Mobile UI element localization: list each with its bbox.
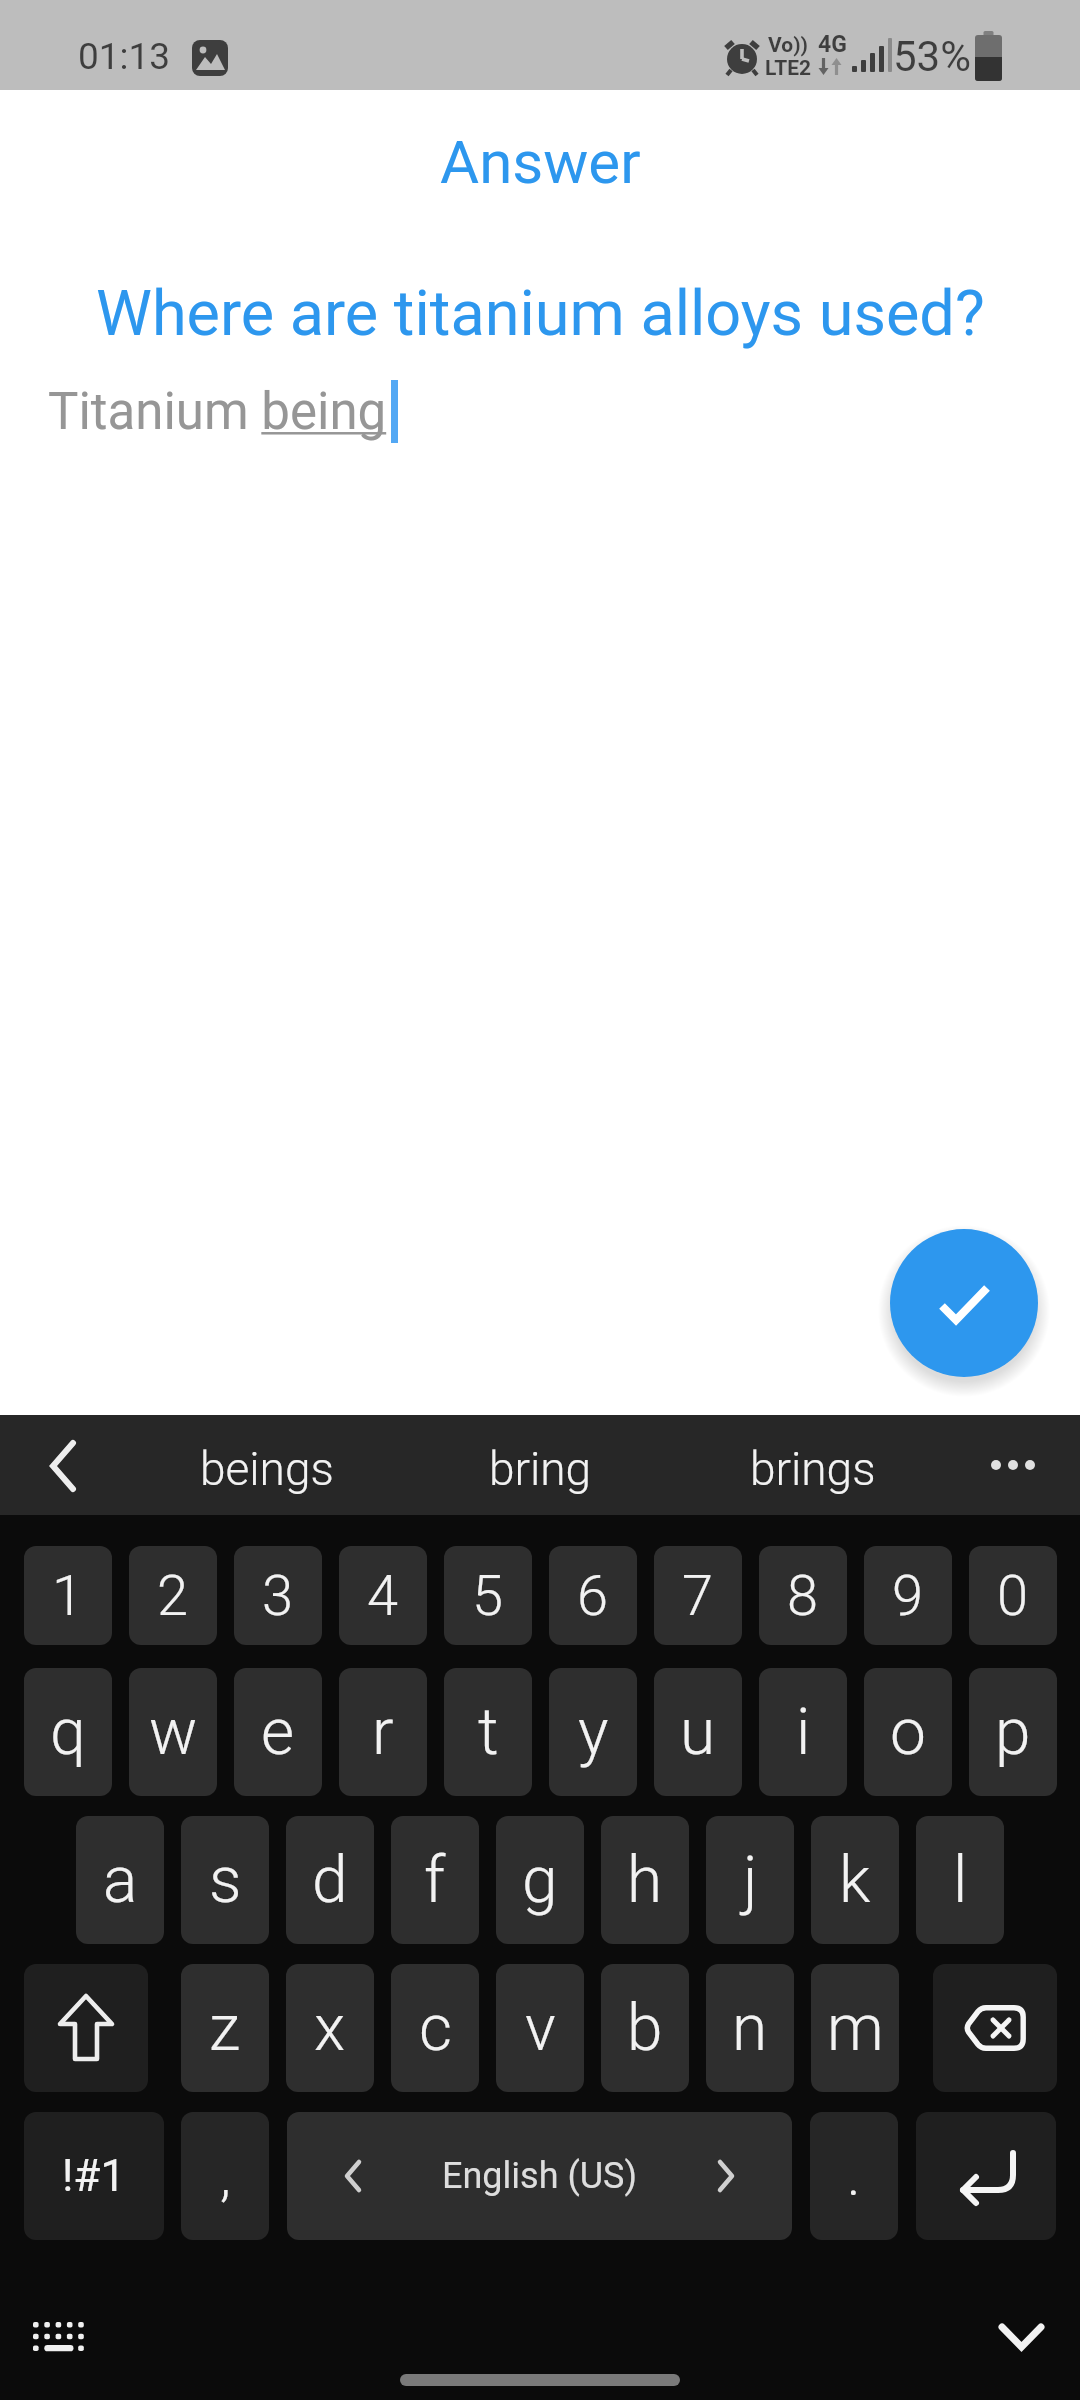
staticText: brings — [750, 1442, 876, 1496]
staticText: !#1 — [62, 2150, 126, 2202]
button[interactable]: v — [496, 1964, 584, 2092]
staticText: j — [743, 1843, 758, 1918]
button[interactable] — [890, 1229, 1038, 1377]
staticText: x — [314, 1991, 346, 2066]
button[interactable]: 3 — [234, 1546, 322, 1645]
staticText: f — [424, 1843, 446, 1918]
button[interactable]: brings — [703, 1419, 923, 1519]
button[interactable]: bring — [430, 1419, 650, 1519]
staticText: v — [525, 1991, 556, 2066]
button[interactable] — [45, 1440, 83, 1492]
button[interactable]: r — [339, 1668, 427, 1796]
staticText: 1 — [52, 1563, 84, 1629]
button[interactable] — [24, 1964, 148, 2092]
button[interactable]: g — [496, 1816, 584, 1944]
staticText: k — [839, 1843, 871, 1918]
staticText: 8 — [787, 1563, 819, 1629]
staticText: English (US) — [442, 2155, 637, 2197]
button[interactable]: p — [969, 1668, 1057, 1796]
staticText: g — [522, 1843, 558, 1918]
staticText: 7 — [682, 1563, 714, 1629]
button[interactable]: w — [129, 1668, 217, 1796]
button[interactable]: c — [391, 1964, 479, 2092]
button[interactable]: . — [810, 2112, 898, 2240]
button[interactable]: f — [391, 1816, 479, 1944]
staticText: w — [149, 1695, 198, 1770]
staticText: r — [372, 1695, 394, 1770]
button[interactable]: x — [286, 1964, 374, 2092]
button[interactable]: e — [234, 1668, 322, 1796]
staticText: 3 — [262, 1563, 294, 1629]
button[interactable]: 5 — [444, 1546, 532, 1645]
button[interactable]: 6 — [549, 1546, 637, 1645]
button[interactable]: l — [916, 1816, 1004, 1944]
button[interactable]: beings — [157, 1419, 377, 1519]
button[interactable] — [988, 1455, 1044, 1475]
staticText: c — [419, 1991, 452, 2066]
button[interactable]: 1 — [24, 1546, 112, 1645]
staticText: p — [995, 1695, 1031, 1770]
button[interactable]: 8 — [759, 1546, 847, 1645]
button[interactable]: z — [181, 1964, 269, 2092]
staticText: m — [827, 1991, 884, 2066]
button[interactable]: i — [759, 1668, 847, 1796]
staticText: i — [796, 1695, 811, 1770]
button[interactable] — [998, 2323, 1046, 2353]
staticText: z — [209, 1991, 241, 2066]
button[interactable]: 7 — [654, 1546, 742, 1645]
button[interactable]: b — [601, 1964, 689, 2092]
button[interactable]: English (US) — [287, 2112, 792, 2240]
staticText: 5 — [472, 1563, 504, 1629]
button[interactable]: m — [811, 1964, 899, 2092]
staticText: Titanium being — [48, 382, 387, 442]
staticText: s — [209, 1843, 242, 1918]
button[interactable]: 9 — [864, 1546, 952, 1645]
staticText: y — [578, 1695, 609, 1770]
button[interactable]: k — [811, 1816, 899, 1944]
button[interactable]: 4 — [339, 1546, 427, 1645]
button[interactable]: d — [286, 1816, 374, 1944]
staticText: Vo)) — [768, 33, 808, 58]
button[interactable]: , — [181, 2112, 269, 2240]
button[interactable]: j — [706, 1816, 794, 1944]
button[interactable] — [933, 1964, 1057, 2092]
staticText: q — [50, 1695, 86, 1770]
staticText: , — [220, 2143, 231, 2209]
staticText: bring — [489, 1442, 592, 1496]
staticText: 2 — [157, 1563, 189, 1629]
button[interactable] — [916, 2112, 1056, 2240]
button[interactable]: h — [601, 1816, 689, 1944]
button[interactable]: n — [706, 1964, 794, 2092]
staticText: 53% — [893, 32, 971, 81]
staticText: e — [261, 1695, 295, 1770]
staticText: . — [847, 2143, 861, 2209]
staticText: t — [478, 1695, 499, 1770]
staticText: 9 — [892, 1563, 924, 1629]
staticText: n — [732, 1991, 768, 2066]
staticText: Answer — [440, 127, 641, 197]
staticText: 01:13 — [78, 35, 171, 78]
staticText: b — [627, 1991, 663, 2066]
button[interactable]: u — [654, 1668, 742, 1796]
button[interactable] — [33, 2322, 87, 2356]
button[interactable]: y — [549, 1668, 637, 1796]
button[interactable]: o — [864, 1668, 952, 1796]
button[interactable]: t — [444, 1668, 532, 1796]
button[interactable]: a — [76, 1816, 164, 1944]
staticText: u — [680, 1695, 716, 1770]
button[interactable]: 2 — [129, 1546, 217, 1645]
button[interactable]: !#1 — [24, 2112, 164, 2240]
staticText: l — [953, 1843, 968, 1918]
staticText: 4 — [367, 1563, 399, 1629]
staticText: beings — [200, 1442, 334, 1496]
button[interactable]: s — [181, 1816, 269, 1944]
button[interactable]: q — [24, 1668, 112, 1796]
staticText: o — [890, 1695, 926, 1770]
staticText: Where are titanium alloys used? — [96, 277, 985, 351]
staticText: LTE2 — [765, 56, 812, 81]
button[interactable]: 0 — [969, 1546, 1057, 1645]
staticText: 4G — [818, 31, 847, 58]
staticText: d — [312, 1843, 348, 1918]
staticText: 0 — [997, 1563, 1029, 1629]
staticText: 6 — [577, 1563, 609, 1629]
